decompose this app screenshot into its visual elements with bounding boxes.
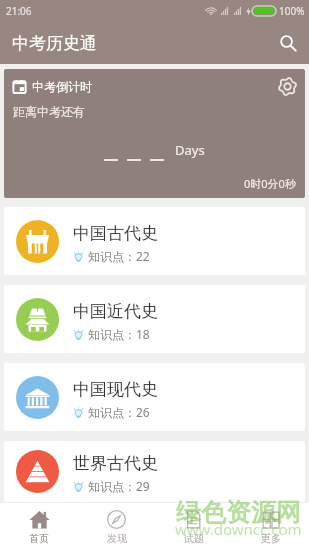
button[interactable]: 试题 [155,503,232,550]
button[interactable]: 中国近代史 [4,285,305,353]
staticText: 中国现代史 [73,379,158,400]
staticText: 知识点：29 [88,478,150,494]
staticText: 中考历史通 [12,33,97,54]
staticText: 中国近代史 [73,301,158,322]
staticText: 试题 [184,532,204,545]
staticText: 知识点：18 [88,326,150,342]
staticText: 首页 [29,532,49,545]
staticText: 距离中考还有 [13,104,85,119]
button[interactable]: 世界古代史 [4,441,305,502]
button[interactable]: 更多 [232,503,309,550]
staticText: 知识点：26 [88,404,150,420]
button[interactable]: Search [267,22,309,64]
staticText: 21:06 [6,4,32,18]
staticText: Days [175,141,205,159]
staticText: 世界古代史 [73,453,158,474]
staticText: 0时0分0秒 [244,176,296,191]
staticText: 知识点：22 [88,248,150,264]
staticText: 中考倒计时 [32,79,92,94]
staticText: 发现 [107,532,127,545]
staticText: 更多 [261,532,281,545]
staticText: 绿色资源网 [176,497,301,528]
staticText: 100% [279,4,305,18]
staticText: www.downcc.com [175,519,302,539]
button[interactable]: 发现 [78,503,155,550]
button[interactable]: Settings [269,69,305,104]
button[interactable]: 首页 [0,503,78,550]
button[interactable]: 中国现代史 [4,363,305,431]
staticText: 中国古代史 [73,223,158,244]
button[interactable]: 中考倒计时 [4,69,305,198]
button[interactable]: 中国古代史 [4,207,305,275]
